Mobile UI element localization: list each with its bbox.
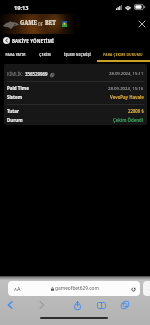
staticText: Paid Time	[7, 85, 29, 91]
staticText: OF	[38, 21, 43, 27]
staticText: 19:13	[14, 4, 29, 12]
staticText: Sistem	[7, 94, 23, 100]
staticText: PARA YATIR	[5, 52, 26, 57]
button[interactable]: Bookmarks	[94, 298, 108, 312]
button[interactable]: Share	[70, 298, 84, 312]
staticText: BAKİYE YÖNETİMİ	[12, 38, 54, 44]
staticText: GAME	[20, 18, 37, 28]
button[interactable]: Back	[0, 35, 12, 46]
button[interactable]: Forward	[35, 298, 49, 312]
staticText: ᴀA	[14, 285, 21, 293]
button[interactable]: Tabs	[118, 298, 132, 312]
staticText: İŞLEM GEÇMİŞİ	[64, 52, 91, 57]
button[interactable]: PARA ÇEKME DURUMU	[96, 47, 150, 61]
staticText: 28.09.2024, 15:16	[108, 85, 144, 91]
staticText: BET	[45, 18, 56, 28]
staticText: 28.09.2024, 15:11	[109, 71, 144, 77]
staticText: Durum	[7, 117, 23, 123]
staticText: PARA ÇEKME DURUMU	[103, 52, 143, 57]
staticText: Tutar	[7, 108, 19, 114]
staticText: VevoPay Havale	[110, 94, 144, 100]
staticText: Çekim Ödendi	[113, 117, 144, 123]
button[interactable]: ᴀA	[8, 281, 140, 296]
button[interactable]: Copy	[49, 72, 54, 77]
button[interactable]: Close	[136, 18, 148, 30]
button[interactable]: İŞLEM GEÇMİŞİ	[60, 47, 95, 61]
button[interactable]: Back	[3, 298, 17, 312]
staticText: ÇEKİM	[39, 52, 51, 57]
staticText: 356529969	[25, 71, 48, 77]
staticText: KİMLİK:	[7, 71, 25, 77]
button[interactable]: PARA YATIR	[0, 47, 30, 61]
button[interactable]: Reload	[130, 286, 136, 292]
staticText: 22800 ₺	[128, 108, 144, 114]
button[interactable]: ÇEKİM	[30, 47, 60, 61]
staticText: gameofbet629.com	[55, 285, 99, 292]
